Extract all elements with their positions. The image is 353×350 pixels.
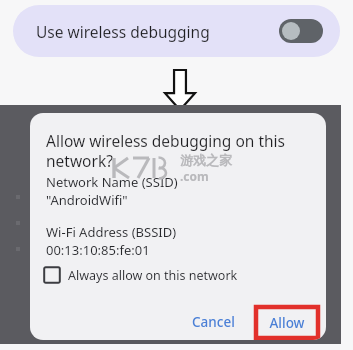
- button[interactable]: Use wireless debugging toggle: [279, 19, 323, 43]
- staticText: Network Name (SSID) "AndroidWifi": [46, 173, 178, 209]
- staticText: Use wireless debugging: [36, 21, 210, 42]
- button[interactable]: Cancel: [182, 306, 245, 338]
- button[interactable]: Always allow on this network: [42, 265, 314, 285]
- button[interactable]: Use wireless debugging: [13, 5, 340, 57]
- button[interactable]: Allow: [256, 307, 318, 338]
- staticText: Always allow on this network: [68, 267, 238, 284]
- staticText: Wi-Fi Address (BSSID) 00:13:10:85:fe:01: [46, 223, 177, 259]
- staticText: Allow wireless debugging on this network…: [46, 130, 285, 171]
- staticText: Allow: [269, 314, 305, 332]
- staticText: Cancel: [192, 313, 235, 331]
- staticText: .com: [180, 168, 209, 184]
- staticText: 游戏之家: [180, 152, 232, 168]
